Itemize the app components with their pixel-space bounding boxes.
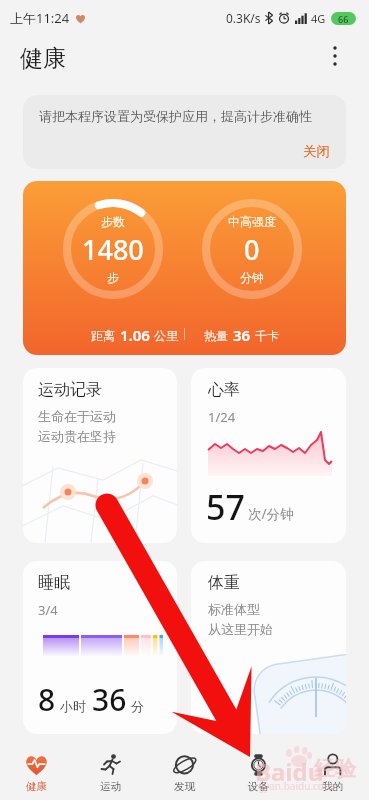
button[interactable]: 设备 (221, 753, 295, 800)
staticText: 步数 (101, 214, 125, 229)
staticText: 健康 (26, 780, 47, 793)
staticText: 距离 (91, 328, 115, 343)
staticText: 0.3K/s (226, 10, 261, 26)
staticText: 步 (107, 270, 119, 285)
staticText: 关闭 (303, 143, 330, 160)
button[interactable]: 运动 (73, 753, 147, 800)
staticText: 设备 (248, 780, 269, 793)
staticText: 0 (244, 231, 260, 268)
staticText: 8 (38, 679, 56, 720)
staticText: Baidu (255, 755, 324, 788)
staticText: 次/分钟 (248, 505, 294, 523)
staticText: 57 (206, 484, 245, 530)
staticText: 标准体型 (208, 601, 260, 617)
staticText: gyan.baidu.com (258, 779, 334, 793)
staticText: 从这里开始 (208, 621, 273, 637)
button[interactable]: 睡眠 (23, 561, 177, 734)
staticText: 经验 (314, 756, 356, 782)
staticText: 分 (131, 698, 144, 714)
staticText: 千卡 (255, 328, 279, 343)
staticText: 热量 (204, 328, 228, 343)
staticText: 3/4 (38, 601, 58, 619)
staticText: 体重 (208, 573, 240, 593)
staticText: 发现 (174, 780, 195, 793)
staticText: 1480 (82, 231, 144, 268)
button[interactable]: 步数 (23, 181, 346, 355)
staticText: 我的 (322, 780, 343, 793)
staticText: 运动贵在坚持 (38, 428, 116, 444)
staticText: 生命在于运动 (38, 408, 116, 424)
button[interactable]: 我的 (295, 753, 369, 800)
staticText: 中高强度 (228, 214, 276, 229)
staticText: 运动记录 (38, 380, 102, 400)
button[interactable]: 运动记录 (23, 368, 177, 543)
button[interactable]: 发现 (147, 753, 221, 800)
staticText: 分钟 (240, 270, 264, 285)
staticText: 健康 (20, 44, 66, 73)
staticText: 请把本程序设置为受保护应用，提高计步准确性 (39, 108, 312, 124)
staticText: 睡眠 (38, 573, 70, 593)
staticText: 心率 (208, 380, 240, 400)
staticText: 66 (338, 13, 349, 25)
button[interactable]: 关闭 (303, 143, 330, 160)
button[interactable]: 心率 (191, 368, 346, 543)
staticText: 1.06 (120, 325, 150, 345)
staticText: 36 (233, 325, 251, 345)
staticText: 运动 (100, 780, 121, 793)
button[interactable] (323, 39, 347, 73)
button[interactable]: 体重 (191, 561, 346, 734)
staticText: 4G (311, 11, 326, 26)
button[interactable]: 请把本程序设置为受保护应用，提高计步准确性 (23, 95, 346, 169)
button[interactable]: 健康 (0, 753, 73, 800)
staticText: 36 (92, 679, 127, 720)
staticText: 公里 (154, 328, 178, 343)
staticText: 小时 (60, 698, 86, 714)
staticText: 上午11:24 (10, 9, 70, 27)
staticText: 1/24 (208, 408, 236, 426)
